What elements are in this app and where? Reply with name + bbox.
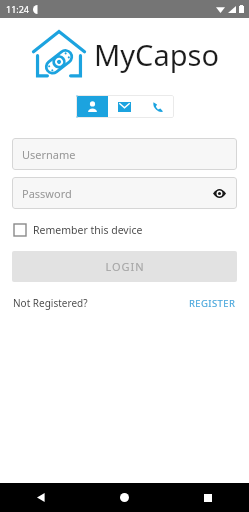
button[interactable]: Username [12,138,237,170]
staticText: MyCapso [94,35,219,74]
button[interactable]: Email login [108,95,141,118]
button[interactable]: Remember this device [14,223,235,237]
staticText: 11:24 [6,3,30,15]
button[interactable]: REGISTER [189,297,236,310]
button[interactable]: LOGIN [12,251,237,282]
staticText: LOGIN [105,259,145,274]
button[interactable]: Password [12,177,237,209]
staticText: Remember this device [33,223,143,237]
staticText: Password [22,186,72,201]
button[interactable]: Username login [76,95,108,118]
button[interactable]: Back [0,483,83,512]
button[interactable]: Show password [211,185,227,201]
button[interactable]: Phone login [141,95,174,118]
button[interactable]: Recent apps [166,483,249,512]
staticText: Username [22,147,76,162]
staticText: Not Registered? [13,296,88,310]
button[interactable]: Home [83,483,166,512]
staticText: REGISTER [189,297,236,310]
